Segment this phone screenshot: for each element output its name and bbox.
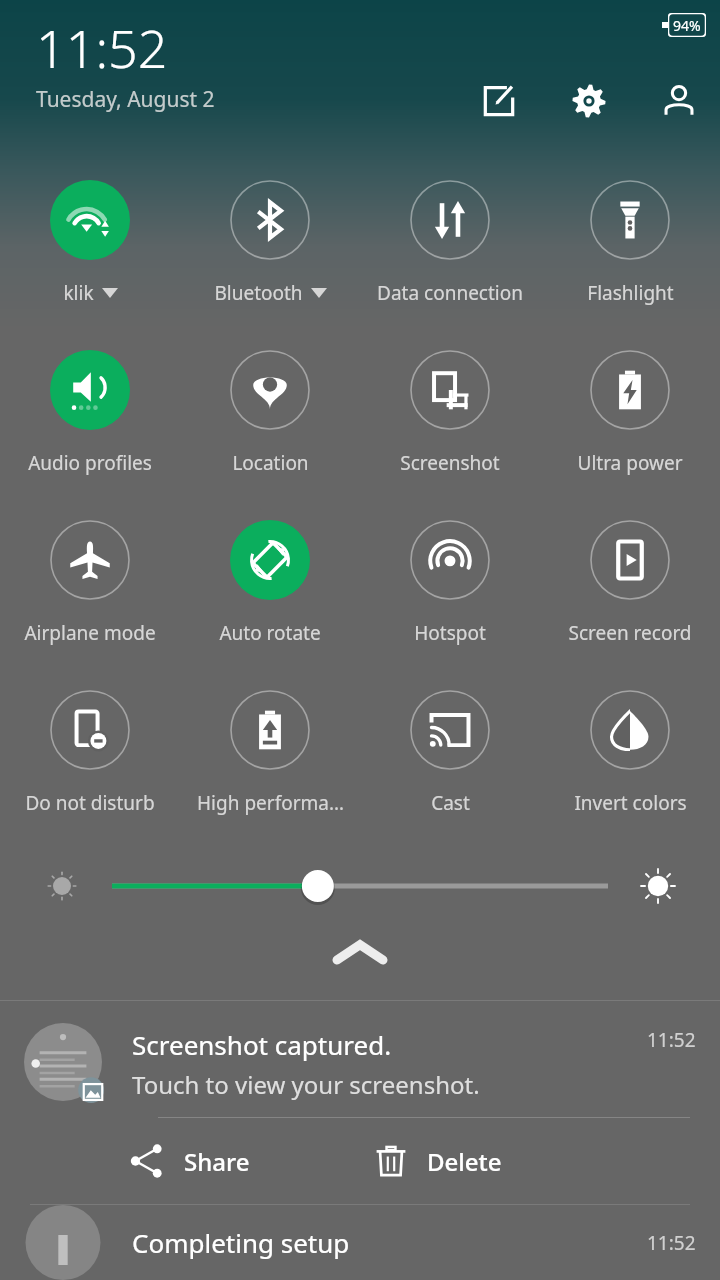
staticText: 11:52 [36, 12, 168, 83]
staticText: Audio profiles [28, 450, 152, 476]
staticText: Bluetooth [214, 280, 303, 306]
button[interactable]: Share [130, 1118, 375, 1204]
staticText: klik [63, 280, 94, 306]
staticText: High performa… [197, 790, 344, 816]
button[interactable] [112, 864, 608, 908]
button[interactable]: Delete [375, 1118, 620, 1204]
staticText: Location [232, 450, 309, 476]
staticText: Cast [431, 790, 470, 816]
button[interactable]: Low brightness [40, 864, 84, 908]
button[interactable]: Bluetooth [180, 168, 360, 338]
button[interactable]: Screenshot [360, 338, 540, 508]
button[interactable]: Invert colors [540, 678, 720, 848]
staticText: Touch to view your screenshot. [132, 1068, 480, 1101]
button[interactable]: Settings [566, 78, 612, 124]
staticText: Screenshot [400, 450, 500, 476]
staticText: Invert colors [574, 790, 687, 816]
staticText: Hotspot [414, 620, 486, 646]
button[interactable]: Location [180, 338, 360, 508]
staticText: Flashlight [587, 280, 674, 306]
staticText: Auto rotate [219, 620, 321, 646]
staticText: Data connection [377, 280, 523, 306]
button[interactable]: High performa… [180, 678, 360, 848]
button[interactable]: Auto rotate [180, 508, 360, 678]
staticText: 11:52 [647, 1230, 696, 1256]
button[interactable]: Collapse quick settings [0, 924, 720, 982]
staticText: 11:52 [647, 1027, 696, 1053]
staticText: Do not disturb [25, 790, 155, 816]
button[interactable]: Flashlight [540, 168, 720, 338]
button[interactable]: User profile [656, 78, 702, 124]
staticText: 94% [673, 16, 701, 35]
button[interactable]: Screenshot captured. [0, 1001, 720, 1204]
staticText: Completing setup [132, 1225, 647, 1260]
button[interactable]: Do not disturb [0, 678, 180, 848]
staticText: Delete [427, 1145, 502, 1178]
staticText: Tuesday, August 2 [36, 85, 215, 114]
button[interactable]: Audio profiles [0, 338, 180, 508]
button[interactable]: Completing setup [0, 1205, 720, 1280]
staticText: Airplane mode [24, 620, 156, 646]
staticText: Ultra power [577, 450, 683, 476]
button[interactable]: Screen record [540, 508, 720, 678]
button[interactable]: Edit [476, 78, 522, 124]
staticText: Screen record [568, 620, 692, 646]
button[interactable]: Airplane mode [0, 508, 180, 678]
button[interactable]: High brightness [636, 864, 680, 908]
button[interactable]: klik [0, 168, 180, 338]
button[interactable]: Hotspot [360, 508, 540, 678]
button[interactable]: Cast [360, 678, 540, 848]
button[interactable]: Ultra power [540, 338, 720, 508]
staticText: Screenshot captured. [132, 1027, 647, 1062]
staticText: Share [184, 1145, 250, 1178]
button[interactable]: Data connection [360, 168, 540, 338]
